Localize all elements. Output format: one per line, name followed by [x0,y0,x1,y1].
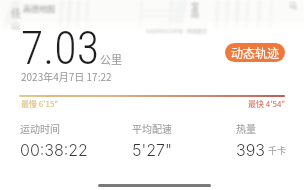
staticText: 热量 [236,121,256,135]
staticText: 高德地图 [23,3,55,15]
staticText: 动态轨迹 [231,44,280,61]
staticText: 马 [289,0,297,12]
staticText: 7.03 [21,21,100,75]
staticText: 运动时间 [20,121,60,135]
staticText: 最慢 6'15" [21,98,59,110]
staticText: 5'27" [132,140,172,159]
staticText: 山 [11,19,21,32]
staticText: 最快 4'54" [248,98,286,110]
staticText: 393 [236,140,266,159]
staticText: 宝 [191,0,199,12]
staticText: 平均配速 [132,121,172,135]
staticText: 千卡 [268,144,287,157]
staticText: 公里 [100,51,122,67]
button[interactable]: 动态轨迹 [225,43,285,62]
staticText: GS(2023)1216号 - 甲测资字 [146,27,207,34]
staticText: 佳 [11,5,21,19]
staticText: 2023年4月7日 17:22 [21,69,112,83]
staticText: 00:38:22 [20,140,88,159]
staticText: 路 [191,8,199,20]
